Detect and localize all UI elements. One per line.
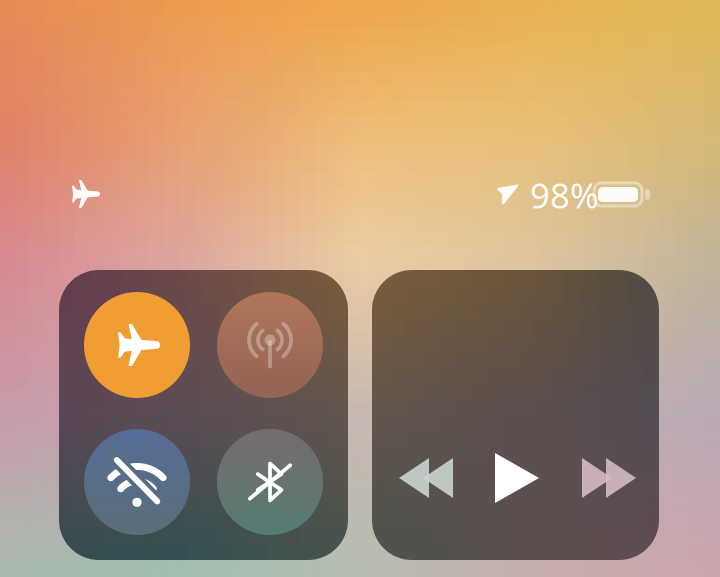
button[interactable]: Wi-Fi [0,0,720,577]
button[interactable]: Play [0,0,720,577]
button[interactable]: Bluetooth [0,0,720,577]
button[interactable]: Rewind [0,0,720,577]
button[interactable]: Cellular Data [0,0,720,577]
staticText: 98% [530,172,599,218]
button[interactable]: Fast Forward [0,0,720,577]
button[interactable]: Airplane Mode [0,0,720,577]
